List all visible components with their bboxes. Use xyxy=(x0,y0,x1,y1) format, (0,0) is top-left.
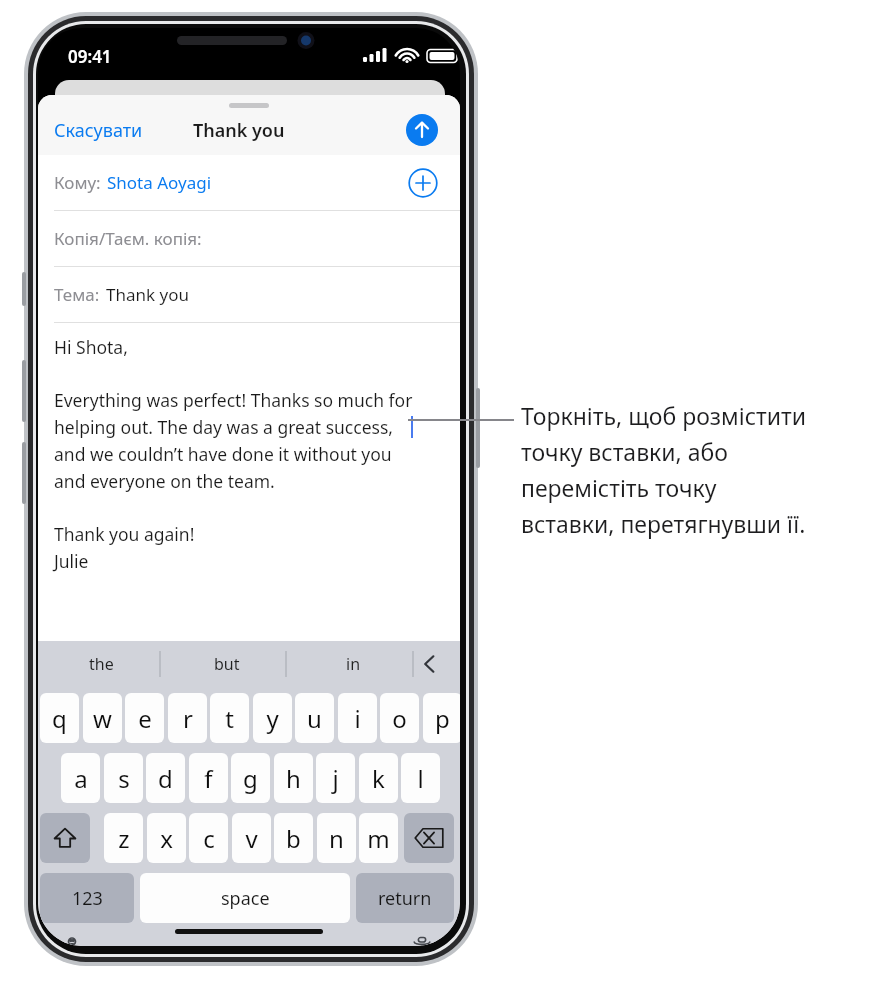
staticText: Everything was perfect! Thanks so much f… xyxy=(54,388,413,415)
staticText: b xyxy=(286,822,301,855)
button[interactable]: p xyxy=(423,693,460,743)
button[interactable]: but xyxy=(164,641,290,687)
button[interactable]: Згорнути пропозиції xyxy=(408,642,452,686)
staticText: 09:41 xyxy=(68,45,112,68)
staticText: y xyxy=(266,702,279,735)
button[interactable]: c xyxy=(189,813,228,863)
staticText: вставки, перетягнувши її. xyxy=(521,508,806,544)
button[interactable]: q xyxy=(40,693,79,743)
staticText: c xyxy=(203,822,215,855)
staticText: but xyxy=(214,653,240,675)
staticText: w xyxy=(93,702,112,735)
staticText: Thank you xyxy=(193,118,285,143)
button[interactable]: Емодзі xyxy=(50,937,94,946)
button[interactable]: a xyxy=(61,753,100,803)
staticText: p xyxy=(435,702,450,735)
staticText: Тема: xyxy=(54,283,100,306)
button[interactable]: y xyxy=(253,693,292,743)
staticText: return xyxy=(378,886,432,911)
button[interactable]: k xyxy=(359,753,398,803)
staticText: h xyxy=(286,762,301,795)
staticText: e xyxy=(138,702,152,735)
button[interactable]: n xyxy=(317,813,356,863)
button[interactable]: Скасувати xyxy=(38,114,151,147)
staticText: and we couldn’t have done it without you xyxy=(54,442,392,469)
button[interactable]: Тема: xyxy=(38,267,460,322)
staticText: Копія/Таєм. копія: xyxy=(54,227,202,250)
staticText: Julie xyxy=(54,549,89,576)
button[interactable]: return xyxy=(356,873,454,923)
staticText: l xyxy=(417,762,424,795)
button[interactable]: space xyxy=(140,873,350,923)
staticText: 123 xyxy=(72,886,103,911)
button[interactable]: u xyxy=(295,693,334,743)
staticText: t xyxy=(225,702,234,735)
staticText: Торкніть, щоб розмістити xyxy=(521,400,806,436)
button[interactable]: the xyxy=(38,641,164,687)
staticText: g xyxy=(243,762,258,795)
button[interactable]: l xyxy=(401,753,440,803)
staticText: u xyxy=(307,702,322,735)
staticText: and everyone on the team. xyxy=(54,469,275,496)
button[interactable]: x xyxy=(147,813,186,863)
button[interactable]: t xyxy=(210,693,249,743)
staticText: s xyxy=(118,762,130,795)
staticText: Thank you again! xyxy=(54,522,195,549)
button[interactable]: d xyxy=(146,753,185,803)
button[interactable]: Shift xyxy=(40,813,90,863)
staticText: x xyxy=(160,822,173,855)
staticText: q xyxy=(52,702,67,735)
button[interactable]: Видалити xyxy=(404,813,454,863)
button[interactable]: v xyxy=(232,813,271,863)
button[interactable]: i xyxy=(338,693,377,743)
button[interactable]: in xyxy=(290,641,416,687)
button[interactable]: r xyxy=(168,693,207,743)
staticText: a xyxy=(74,762,88,795)
staticText: k xyxy=(372,762,385,795)
staticText: n xyxy=(329,822,344,855)
button[interactable]: e xyxy=(125,693,164,743)
button[interactable]: w xyxy=(83,693,122,743)
staticText: z xyxy=(118,822,130,855)
button[interactable]: Копія/Таєм. копія: xyxy=(38,211,460,266)
staticText: in xyxy=(346,653,361,675)
button[interactable]: o xyxy=(380,693,419,743)
staticText: j xyxy=(332,762,339,795)
staticText: Hi Shota, xyxy=(54,335,128,362)
button[interactable]: s xyxy=(104,753,143,803)
staticText: o xyxy=(392,702,407,735)
staticText: Shota Aoyagi xyxy=(107,171,212,194)
staticText: d xyxy=(158,762,173,795)
button[interactable]: 123 xyxy=(40,873,134,923)
button[interactable]: m xyxy=(359,813,398,863)
staticText: Thank you xyxy=(106,283,189,306)
button[interactable]: g xyxy=(231,753,270,803)
staticText: the xyxy=(89,653,114,675)
staticText: m xyxy=(367,822,390,855)
staticText: Скасувати xyxy=(54,118,143,143)
staticText: i xyxy=(354,702,361,735)
staticText: space xyxy=(221,886,270,911)
button[interactable]: Кому: xyxy=(38,155,460,210)
button[interactable]: b xyxy=(274,813,313,863)
button[interactable]: j xyxy=(316,753,355,803)
staticText: Кому: xyxy=(54,171,101,194)
button[interactable]: h xyxy=(274,753,313,803)
button[interactable]: Додати контакт xyxy=(408,168,438,198)
staticText: helping out. The day was a great success… xyxy=(54,415,393,442)
button[interactable]: Надіслати xyxy=(406,114,438,146)
staticText: r xyxy=(183,702,193,735)
button[interactable]: f xyxy=(189,753,228,803)
staticText: v xyxy=(245,822,258,855)
staticText: точку вставки, або xyxy=(521,436,728,472)
staticText: f xyxy=(204,762,213,795)
button[interactable]: z xyxy=(104,813,143,863)
button[interactable]: Диктування xyxy=(400,937,444,946)
staticText: перемістіть точку xyxy=(521,472,717,508)
